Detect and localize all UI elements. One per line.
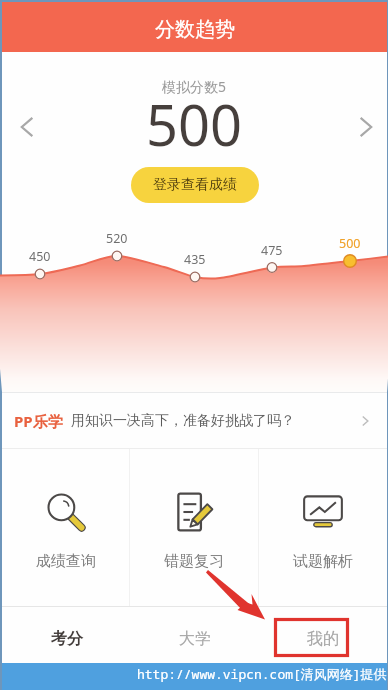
staticText: 考分 [51, 629, 83, 649]
staticText: 错题复习 [164, 552, 224, 571]
staticText: 分数趋势 [155, 17, 235, 42]
staticText: 475 [261, 242, 283, 259]
staticText: PP乐学 [14, 411, 63, 431]
button[interactable]: 登录查看成绩 [131, 167, 259, 203]
button[interactable]: PP乐学 [2, 393, 387, 448]
staticText: 520 [106, 230, 128, 247]
button[interactable]: 大学 [131, 607, 259, 663]
button[interactable]: 我的 [259, 607, 387, 663]
button[interactable]: Previous [8, 106, 50, 148]
staticText: http://www.vipcn.com[清风网络]提供 [137, 665, 387, 683]
button[interactable]: 考分 [2, 607, 131, 663]
staticText: 用知识一决高下，准备好挑战了吗？ [71, 412, 295, 430]
button[interactable]: 试题解析 [259, 449, 387, 606]
staticText: 试题解析 [293, 552, 353, 571]
button[interactable]: 错题复习 [130, 449, 258, 606]
staticText: 435 [184, 251, 206, 268]
button[interactable]: Next [343, 106, 385, 148]
button[interactable]: 成绩查询 [2, 449, 129, 606]
staticText: 大学 [179, 629, 211, 649]
staticText: 成绩查询 [36, 552, 96, 571]
staticText: 450 [29, 248, 51, 265]
staticText: 登录查看成绩 [153, 176, 237, 194]
staticText: 500 [146, 86, 243, 162]
staticText: 我的 [307, 629, 339, 649]
staticText: 模拟分数5 [162, 77, 227, 96]
staticText: 500 [339, 235, 361, 252]
